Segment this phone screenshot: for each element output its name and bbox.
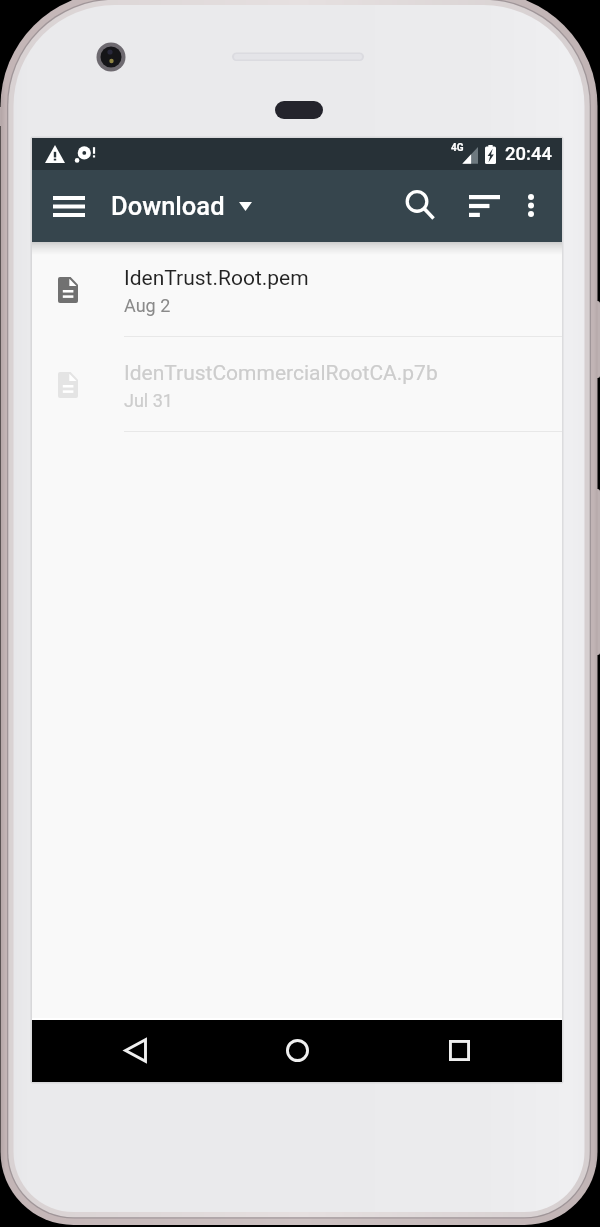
button[interactable]: Recents [431,1022,487,1078]
button[interactable]: Search [394,179,446,231]
staticText: 20:44 [505,143,552,165]
staticText: 4G [451,142,464,154]
staticText: Aug 2 [124,295,171,316]
staticText: IdenTrustCommercialRootCA.p7b [124,361,438,386]
button[interactable]: More options [508,182,554,228]
staticText: Download [111,191,225,221]
button[interactable]: Home [269,1022,325,1078]
button[interactable]: IdenTrustCommercialRootCA.p7b [32,337,562,432]
button[interactable]: Open navigation drawer [40,185,96,229]
staticText: IdenTrust.Root.pem [124,266,309,291]
button[interactable]: IdenTrust.Root.pem [32,242,562,337]
button[interactable]: Download [111,183,252,229]
button[interactable]: Sort [456,183,512,229]
staticText: Jul 31 [124,390,173,411]
button[interactable]: Back [107,1022,163,1078]
